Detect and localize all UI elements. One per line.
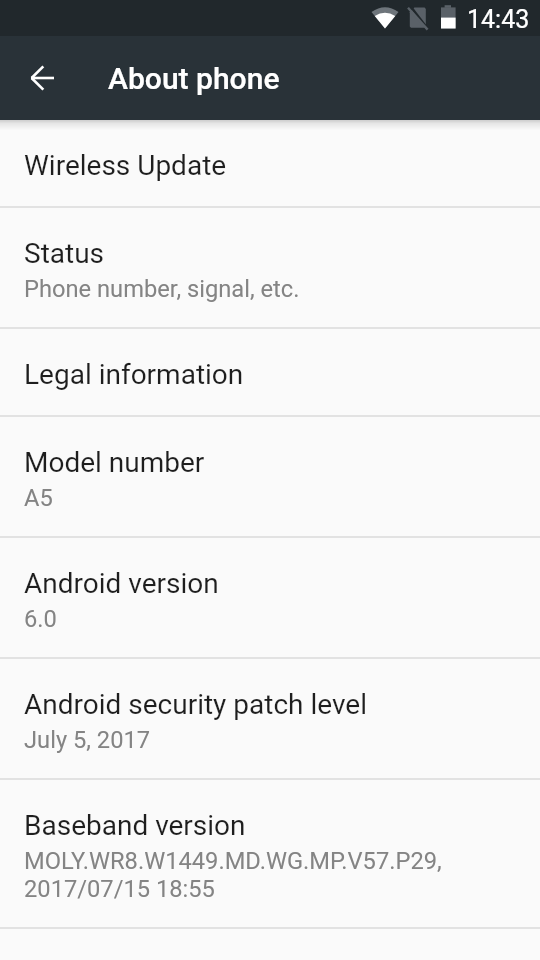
staticText: MOLY.WR8.W1449.MD.WG.MP.V57.P29, bbox=[24, 847, 442, 875]
staticText: Model number bbox=[24, 447, 205, 479]
button[interactable]: Wireless Update bbox=[0, 120, 540, 206]
button[interactable]: Status bbox=[0, 208, 540, 327]
button[interactable]: Baseband version bbox=[0, 780, 540, 927]
staticText: Phone number, signal, etc. bbox=[24, 275, 300, 303]
staticText: A5 bbox=[24, 484, 53, 512]
staticText: Status bbox=[24, 238, 105, 270]
button[interactable]: Back bbox=[14, 50, 70, 106]
button[interactable]: Model number bbox=[0, 417, 540, 536]
button[interactable]: Android version bbox=[0, 538, 540, 657]
staticText: 2017/07/15 18:55 bbox=[24, 875, 215, 903]
staticText: Baseband version bbox=[24, 810, 246, 842]
staticText: 14:43 bbox=[467, 5, 530, 34]
staticText: July 5, 2017 bbox=[24, 726, 151, 754]
staticText: About phone bbox=[108, 61, 280, 96]
staticText: Android security patch level bbox=[24, 689, 367, 721]
staticText: Legal information bbox=[24, 359, 244, 391]
staticText: Android version bbox=[24, 568, 219, 600]
button[interactable]: Android security patch level bbox=[0, 659, 540, 778]
staticText: Wireless Update bbox=[24, 150, 227, 182]
button[interactable]: Legal information bbox=[0, 329, 540, 415]
staticText: 6.0 bbox=[24, 605, 57, 633]
